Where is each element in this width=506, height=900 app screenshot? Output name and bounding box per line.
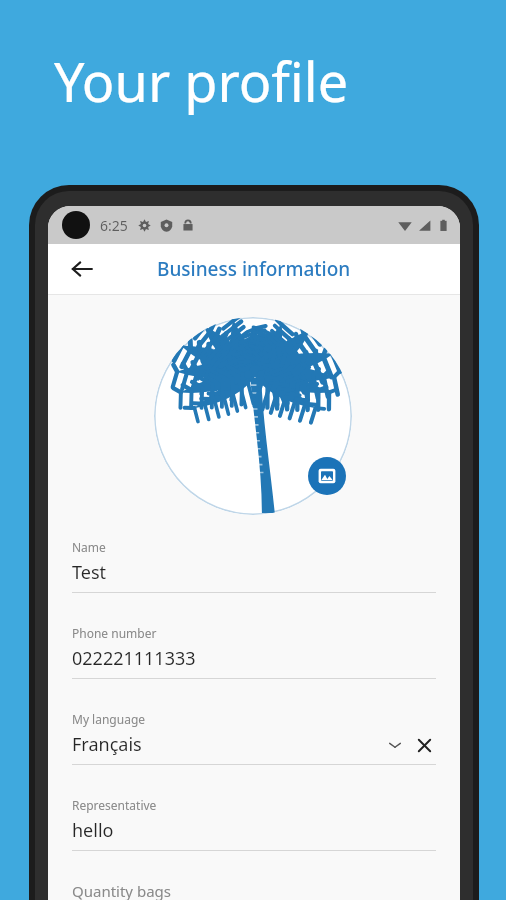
staticText: Phone number: [72, 625, 157, 641]
button[interactable]: My language: [72, 711, 436, 765]
button[interactable]: Representative: [72, 797, 436, 851]
staticText: Your profile: [54, 44, 349, 118]
button[interactable]: Phone number: [72, 625, 436, 679]
button[interactable]: [154, 317, 352, 515]
button[interactable]: Back: [62, 249, 102, 289]
button[interactable]: Open dropdown: [384, 734, 406, 756]
staticText: Quantity bags: [72, 881, 171, 900]
button[interactable]: Name: [72, 539, 436, 593]
staticText: Business information: [157, 256, 351, 282]
staticText: Test: [72, 560, 107, 585]
staticText: 6:25: [100, 216, 128, 235]
button[interactable]: Clear: [412, 733, 436, 757]
staticText: Français: [72, 732, 142, 757]
button[interactable]: Change photo: [308, 457, 346, 495]
staticText: 022221111333: [72, 646, 196, 671]
staticText: hello: [72, 818, 114, 843]
staticText: Name: [72, 539, 106, 555]
staticText: Representative: [72, 797, 157, 813]
staticText: My language: [72, 711, 146, 727]
